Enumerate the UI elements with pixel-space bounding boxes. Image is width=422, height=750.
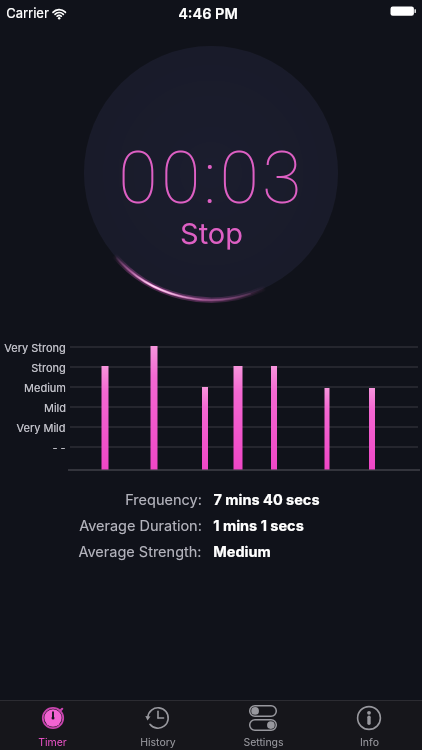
staticText: Settings bbox=[243, 736, 284, 749]
staticText: 1 mins 1 secs bbox=[213, 517, 304, 535]
button[interactable]: 00:03 bbox=[84, 46, 338, 300]
staticText: 00:03 bbox=[118, 136, 305, 220]
staticText: History bbox=[140, 736, 176, 749]
staticText: 7 mins 40 secs bbox=[213, 491, 320, 509]
staticText: Carrier bbox=[6, 5, 49, 21]
staticText: Frequency: bbox=[125, 491, 202, 509]
staticText: Average Duration: bbox=[79, 517, 202, 535]
staticText: Medium bbox=[24, 381, 66, 394]
button[interactable]: Info bbox=[316, 700, 422, 750]
staticText: Medium bbox=[213, 543, 271, 561]
staticText: Mild bbox=[44, 401, 66, 414]
button[interactable]: Timer bbox=[0, 700, 105, 750]
staticText: 4:46 PM bbox=[178, 5, 238, 23]
staticText: Very Mild bbox=[16, 421, 66, 434]
staticText: Info bbox=[360, 736, 379, 749]
button[interactable]: Settings bbox=[210, 700, 316, 750]
staticText: Stop bbox=[180, 216, 243, 251]
staticText: - - bbox=[52, 441, 66, 454]
staticText: Strong bbox=[31, 361, 66, 374]
button[interactable]: History bbox=[105, 700, 210, 750]
staticText: Very Strong bbox=[4, 341, 66, 354]
staticText: Average Strength: bbox=[78, 543, 202, 561]
staticText: Timer bbox=[38, 736, 67, 749]
